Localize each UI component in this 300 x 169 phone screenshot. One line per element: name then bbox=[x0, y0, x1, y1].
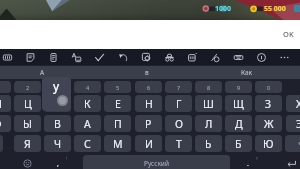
staticText: ! bbox=[66, 156, 68, 161]
button[interactable]: Backspace bbox=[285, 135, 300, 152]
button[interactable]: В bbox=[44, 115, 71, 132]
button[interactable]: 7 bbox=[165, 81, 192, 93]
staticText: Русский bbox=[144, 159, 169, 168]
staticText: у bbox=[53, 78, 60, 94]
button[interactable]: Emoji bbox=[14, 155, 41, 169]
staticText: 8 bbox=[207, 84, 211, 91]
button[interactable]: Ц bbox=[14, 95, 41, 112]
staticText: Н bbox=[145, 97, 153, 111]
button[interactable]: Э bbox=[286, 115, 300, 132]
button[interactable]: Г bbox=[165, 95, 192, 112]
button[interactable]: Е bbox=[104, 95, 131, 112]
staticText: Х bbox=[296, 97, 300, 111]
staticText: К bbox=[84, 97, 91, 111]
button[interactable]: Ы bbox=[14, 115, 41, 132]
staticText: Ж bbox=[264, 117, 274, 131]
button[interactable]: П bbox=[104, 115, 131, 132]
button[interactable]: Русский bbox=[83, 155, 230, 169]
button[interactable]: One-handed keyboard bbox=[227, 49, 250, 65]
staticText: Е bbox=[115, 97, 121, 111]
button[interactable]: More options bbox=[273, 49, 296, 65]
button[interactable]: 8 bbox=[195, 81, 222, 93]
staticText: А bbox=[40, 68, 45, 77]
staticText: Я bbox=[24, 137, 31, 151]
button[interactable]: 5 bbox=[104, 81, 131, 93]
button[interactable]: 9 bbox=[225, 81, 252, 93]
staticText: 55 000 bbox=[264, 4, 286, 14]
button[interactable]: Undo bbox=[112, 49, 135, 65]
button[interactable]: OK bbox=[278, 26, 299, 42]
button[interactable]: Я bbox=[14, 135, 41, 152]
button[interactable]: 4 bbox=[74, 81, 101, 93]
button[interactable]: Shift bbox=[0, 135, 3, 152]
button[interactable]: Ж bbox=[255, 115, 282, 132]
button[interactable]: Text editing bbox=[42, 49, 65, 65]
button[interactable]: Р bbox=[135, 115, 162, 132]
staticText: Й bbox=[0, 97, 2, 111]
button[interactable]: Х bbox=[286, 95, 300, 112]
staticText: Б bbox=[235, 137, 242, 151]
button[interactable]: 2 bbox=[14, 81, 41, 93]
button[interactable]: в bbox=[107, 66, 187, 79]
staticText: Д bbox=[235, 117, 243, 131]
button[interactable]: С bbox=[74, 135, 101, 152]
button[interactable]: . bbox=[234, 155, 261, 169]
staticText: А bbox=[84, 117, 91, 131]
button[interactable]: 1 bbox=[0, 81, 11, 93]
button[interactable]: З bbox=[255, 95, 282, 112]
button[interactable]: А bbox=[74, 115, 101, 132]
staticText: 9 bbox=[237, 84, 241, 91]
staticText: Ы bbox=[23, 117, 32, 131]
button[interactable]: , bbox=[44, 155, 71, 169]
button[interactable]: Spell check bbox=[88, 49, 111, 65]
button[interactable]: Settings bbox=[250, 49, 273, 65]
button[interactable]: О bbox=[165, 115, 192, 132]
button[interactable]: Enter bbox=[276, 155, 300, 169]
staticText: Ф bbox=[0, 117, 2, 131]
staticText: Ч bbox=[54, 137, 62, 151]
button[interactable]: 0 bbox=[255, 81, 282, 93]
staticText: В bbox=[54, 117, 61, 131]
button[interactable]: Stickers bbox=[19, 49, 42, 65]
button[interactable]: У bbox=[44, 95, 71, 112]
button[interactable]: Ф bbox=[0, 115, 11, 132]
button[interactable]: 6 bbox=[135, 81, 162, 93]
staticText: Как bbox=[241, 68, 253, 77]
staticText: в bbox=[145, 68, 149, 77]
button[interactable]: Н bbox=[135, 95, 162, 112]
button[interactable]: Ь bbox=[195, 135, 222, 152]
button[interactable]: Б bbox=[225, 135, 252, 152]
button[interactable]: Как bbox=[207, 66, 287, 79]
button[interactable]: А bbox=[2, 66, 82, 79]
button[interactable]: Incognito bbox=[158, 49, 181, 65]
button[interactable]: Clipboard bbox=[0, 49, 19, 65]
button[interactable]: Л bbox=[195, 115, 222, 132]
staticText: . bbox=[247, 159, 249, 169]
staticText: 0 bbox=[267, 84, 271, 91]
button[interactable]: Т bbox=[165, 135, 192, 152]
staticText: 3 bbox=[56, 84, 60, 91]
staticText: М bbox=[113, 137, 123, 151]
button[interactable]: Ю bbox=[255, 135, 282, 152]
button[interactable]: GIF bbox=[181, 49, 204, 65]
button[interactable]: Ч bbox=[44, 135, 71, 152]
button[interactable]: Handwriting bbox=[204, 49, 227, 65]
button[interactable]: Д bbox=[225, 115, 252, 132]
staticText: Р bbox=[145, 117, 152, 131]
button[interactable]: Ш bbox=[195, 95, 222, 112]
button[interactable]: К bbox=[74, 95, 101, 112]
staticText: ? bbox=[256, 156, 258, 161]
button[interactable]: Й bbox=[0, 95, 11, 112]
staticText: З bbox=[265, 97, 272, 111]
button[interactable]: М bbox=[104, 135, 131, 152]
button[interactable]: Translate bbox=[65, 49, 88, 65]
staticText: , bbox=[57, 159, 59, 169]
button[interactable]: Themes bbox=[135, 49, 158, 65]
button[interactable]: 3 bbox=[44, 81, 71, 93]
staticText: И bbox=[145, 137, 153, 151]
staticText: Ц bbox=[24, 97, 32, 111]
button[interactable]: И bbox=[135, 135, 162, 152]
staticText: У bbox=[54, 97, 61, 111]
button[interactable]: Щ bbox=[225, 95, 252, 112]
